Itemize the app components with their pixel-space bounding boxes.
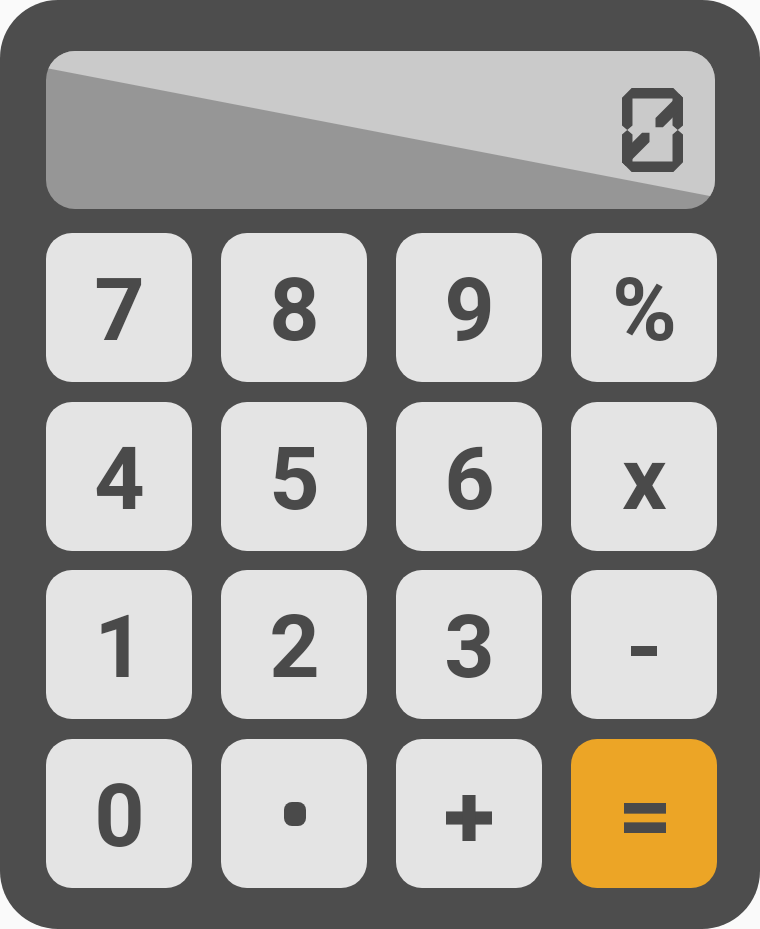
button[interactable]: 8 xyxy=(221,233,367,382)
staticText: 5 xyxy=(269,427,320,530)
button[interactable]: 6 xyxy=(396,402,542,551)
button[interactable]: 5 xyxy=(221,402,367,551)
button[interactable]: 3 xyxy=(396,570,542,719)
staticText: 9 xyxy=(444,258,495,361)
button[interactable]: 1 xyxy=(46,570,192,719)
button[interactable]: x xyxy=(571,402,717,551)
staticText: 4 xyxy=(94,427,145,530)
staticText: 2 xyxy=(269,595,320,698)
button[interactable]: 2 xyxy=(221,570,367,719)
button[interactable]: Equals xyxy=(571,739,717,888)
button[interactable]: Plus xyxy=(396,739,542,888)
staticText: 3 xyxy=(444,595,495,698)
staticText: x xyxy=(622,427,667,530)
staticText: % xyxy=(612,258,677,361)
staticText: 8 xyxy=(269,258,320,361)
staticText: 1 xyxy=(94,595,145,698)
button[interactable]: 0 xyxy=(46,739,192,888)
other: Display showing 0 xyxy=(46,51,715,209)
button[interactable]: % xyxy=(571,233,717,382)
button[interactable]: Decimal point xyxy=(221,739,367,888)
button[interactable]: 9 xyxy=(396,233,542,382)
button[interactable]: 7 xyxy=(46,233,192,382)
button[interactable]: Minus xyxy=(571,570,717,719)
staticText: 6 xyxy=(444,427,495,530)
staticText: 7 xyxy=(94,258,145,361)
staticText: 0 xyxy=(94,764,145,867)
button[interactable]: 4 xyxy=(46,402,192,551)
